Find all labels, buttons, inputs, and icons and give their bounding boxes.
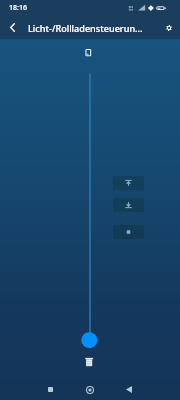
button[interactable]: Stop: [113, 225, 144, 239]
button[interactable]: Back: [2, 16, 23, 39]
staticText: Licht-/Rollladensteuerun...: [28, 22, 143, 34]
staticText: 18:16: [9, 3, 27, 13]
button[interactable]: Move up: [113, 176, 144, 190]
button[interactable]: Settings: [159, 16, 178, 39]
button[interactable]: Move down: [113, 198, 144, 212]
button[interactable]: Back: [110, 379, 147, 400]
button[interactable]: Home: [71, 379, 108, 400]
button[interactable]: Recent apps: [32, 379, 69, 400]
